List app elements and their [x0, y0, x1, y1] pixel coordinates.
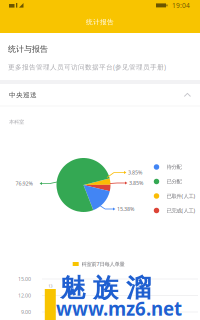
- staticText: 待分配: [166, 164, 181, 170]
- staticText: 本科室: [9, 119, 24, 125]
- staticText: 19:04: [172, 1, 190, 10]
- staticText: 统计报告: [86, 18, 114, 26]
- staticText: 12.00: [18, 292, 31, 299]
- staticText: 已分配: [166, 178, 181, 185]
- staticText: 已完成(人工): [166, 207, 195, 214]
- staticText: www.mz6.net: [56, 296, 182, 320]
- staticText: 9.00: [21, 308, 31, 316]
- staticText: 中央巡送: [9, 91, 37, 99]
- staticText: 统计与报告: [8, 44, 48, 54]
- staticText: 15.38%: [117, 205, 134, 213]
- staticText: 科室前7日每人单量: [81, 260, 124, 268]
- staticText: 3.85%: [128, 169, 142, 176]
- staticText: 3.85%: [129, 179, 143, 187]
- staticText: 76.92%: [15, 180, 32, 187]
- staticText: 更多报告管理人员可访问数据平台(参见管理员手册): [8, 63, 166, 71]
- staticText: 13: [48, 283, 52, 289]
- staticText: 15.00: [18, 275, 31, 283]
- button[interactable]: 中央巡送: [0, 84, 200, 106]
- staticText: 已取件(人工): [166, 192, 195, 200]
- staticText: 魅 族 溜: [60, 272, 151, 303]
